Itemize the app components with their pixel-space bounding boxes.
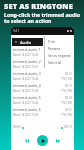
- button[interactable]: Trim: [48, 38, 74, 45]
- button[interactable]: Previous: [24, 138, 30, 144]
- staticText: SET AS RINGTONE: [4, 1, 73, 11]
- staticText: Set as ringtone: [48, 54, 71, 58]
- button[interactable]: trimmed_audio_5: [11, 94, 74, 106]
- other: Back: [14, 40, 18, 44]
- staticText: 176.7 KB: [61, 101, 72, 105]
- staticText: Rename: [48, 47, 61, 51]
- button[interactable]: Select all: [48, 59, 74, 66]
- button[interactable]: trimmed_audio_3: [11, 70, 74, 82]
- staticText: 00:12: [65, 72, 72, 76]
- button[interactable]: trimmed_audio_6: [11, 106, 74, 118]
- staticText: 176.7 KB: [61, 89, 72, 93]
- staticText: trimmed_audio_6: [13, 107, 41, 112]
- staticText: 176.7 KB: [61, 113, 72, 117]
- staticText: 00:13: [64, 125, 72, 129]
- staticText: trimmed_audio_4: [13, 83, 41, 88]
- button[interactable]: Play: [37, 135, 48, 146]
- staticText: 00:13: [65, 84, 72, 88]
- staticText: trimmed_audio_5: [13, 95, 41, 100]
- button[interactable]: Set as ringtone: [48, 52, 74, 59]
- staticText: March 14 2021 15:41: [13, 65, 39, 69]
- staticText: March 14 2021 15:45: [13, 113, 39, 117]
- button[interactable]: trimmed_audio_1: [11, 46, 74, 58]
- staticText: March 14 2021 15:40: [13, 53, 39, 57]
- staticText: March 14 2021 15:44: [13, 101, 39, 105]
- staticText: 00:00: [13, 125, 21, 129]
- staticText: March 14 2021 15:42: [13, 77, 39, 81]
- staticText: Long-click the trimmed audio to select a…: [4, 11, 81, 24]
- button[interactable]: trimmed_audio_4: [11, 82, 74, 94]
- button[interactable]: Next: [55, 138, 61, 144]
- staticText: 176.7 KB: [61, 53, 72, 57]
- staticText: 9:41: [13, 29, 19, 33]
- button[interactable]: Back: [12, 38, 43, 46]
- staticText: trimmed_audio_1: [13, 47, 41, 52]
- staticText: trimmed_audio_2: [13, 59, 41, 64]
- staticText: Trim: [48, 40, 55, 44]
- button[interactable]: trimmed_audio_2: [11, 58, 74, 70]
- staticText: 00:15: [65, 108, 72, 112]
- button[interactable]: Rename: [48, 45, 74, 52]
- staticText: March 14 2021 15:43: [13, 89, 39, 93]
- staticText: 176.7 KB: [61, 77, 72, 81]
- staticText: 00:14: [65, 96, 72, 100]
- staticText: Audio: [20, 40, 32, 45]
- staticText: Select all: [48, 61, 62, 65]
- staticText: trimmed_audio_3: [13, 71, 41, 76]
